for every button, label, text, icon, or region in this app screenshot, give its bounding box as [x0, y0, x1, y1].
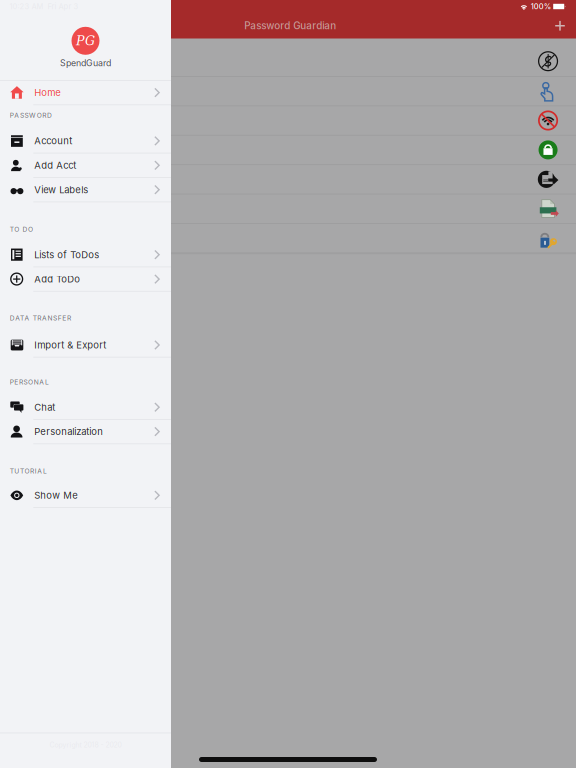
- staticText: View Labels: [34, 184, 88, 195]
- button[interactable]: Account: [0, 129, 171, 153]
- button[interactable]: Add ToDo: [0, 267, 171, 291]
- button[interactable]: List item: [171, 77, 576, 106]
- button[interactable]: Lists of ToDos: [0, 243, 171, 266]
- staticText: PG: [76, 33, 95, 48]
- staticText: Add ToDo: [34, 273, 80, 285]
- staticText: Add Acct: [34, 160, 76, 171]
- button[interactable]: Personalization: [0, 420, 171, 443]
- button[interactable]: Add: [547, 15, 573, 36]
- button[interactable]: List item: [171, 165, 576, 194]
- button[interactable]: Add Acct: [0, 153, 171, 177]
- staticText: Account: [34, 135, 72, 147]
- staticText: Show Me: [34, 490, 78, 501]
- staticText: PERSONAL: [10, 378, 49, 386]
- staticText: DATA TRANSFER: [10, 314, 71, 322]
- staticText: TO DO: [10, 225, 33, 233]
- button[interactable]: List item: [171, 38, 576, 77]
- button[interactable]: View Labels: [0, 178, 171, 201]
- staticText: Import & Export: [34, 339, 106, 351]
- staticText: PASSWORD: [10, 111, 52, 119]
- button[interactable]: List item: [171, 224, 576, 253]
- button[interactable]: List item: [171, 194, 576, 224]
- staticText: 100%: [531, 2, 551, 11]
- staticText: Home: [34, 87, 61, 98]
- button[interactable]: Import & Export: [0, 333, 171, 357]
- staticText: Password Guardian: [244, 20, 336, 32]
- button[interactable]: List item: [171, 136, 576, 165]
- button[interactable]: List item: [171, 106, 576, 136]
- button[interactable]: Home: [0, 81, 171, 104]
- staticText: Lists of ToDos: [34, 249, 99, 260]
- staticText: Personalization: [34, 426, 103, 437]
- staticText: SpendGuard: [60, 58, 111, 68]
- staticText: TUTORIAL: [10, 467, 47, 475]
- button[interactable]: Show Me: [0, 483, 171, 507]
- staticText: Chat: [34, 401, 55, 413]
- button[interactable]: Chat: [0, 395, 171, 419]
